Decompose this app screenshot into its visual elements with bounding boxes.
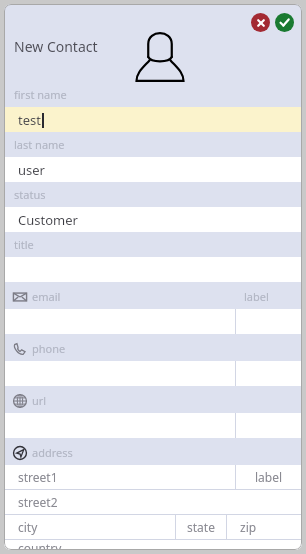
staticText: New Contact (14, 37, 98, 56)
button[interactable] (4, 309, 235, 334)
button[interactable]: street2 (4, 490, 302, 514)
staticText: Customer (18, 211, 78, 229)
staticText: label (244, 289, 269, 304)
button[interactable]: Save (275, 13, 294, 32)
button[interactable]: Contact photo (132, 30, 188, 82)
button[interactable] (236, 413, 302, 438)
button[interactable]: city (4, 515, 175, 539)
button[interactable]: status (4, 182, 302, 207)
staticText: street1 (18, 469, 58, 485)
button[interactable] (4, 257, 302, 282)
staticText: label (255, 469, 283, 485)
staticText: state (187, 519, 215, 535)
button[interactable]: title (4, 232, 302, 257)
staticText: city (18, 519, 38, 535)
staticText: country (18, 540, 62, 550)
button[interactable]: last name (4, 132, 302, 157)
button[interactable]: test (4, 107, 302, 132)
staticText: user (18, 161, 45, 179)
button[interactable]: Cancel (251, 13, 270, 32)
button[interactable]: label (236, 465, 302, 489)
staticText: phone (32, 341, 66, 356)
button[interactable]: state (176, 515, 226, 539)
button[interactable]: user (4, 157, 302, 182)
button[interactable]: street1 (4, 465, 235, 489)
staticText: last name (14, 137, 65, 152)
button[interactable] (4, 361, 235, 386)
staticText: status (14, 187, 46, 202)
button[interactable]: url (4, 388, 302, 413)
button[interactable]: country (4, 540, 302, 550)
button[interactable]: phone (4, 336, 302, 361)
staticText: url (32, 393, 47, 408)
button[interactable]: zip (227, 515, 302, 539)
button[interactable]: Customer (4, 207, 302, 232)
staticText: zip (240, 519, 257, 535)
staticText: street2 (18, 494, 58, 510)
staticText: address (32, 445, 73, 460)
staticText: title (14, 237, 34, 252)
staticText: first name (14, 87, 67, 102)
button[interactable] (236, 309, 302, 334)
button[interactable]: address (4, 440, 302, 465)
staticText: email (32, 289, 61, 304)
button[interactable]: email (4, 284, 302, 309)
button[interactable] (236, 361, 302, 386)
button[interactable]: first name (4, 82, 302, 107)
staticText: test (18, 111, 41, 129)
button[interactable] (4, 413, 235, 438)
